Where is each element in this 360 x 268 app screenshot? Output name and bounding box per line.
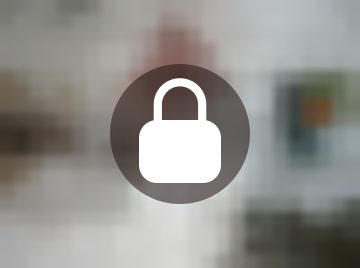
button[interactable]: Content locked [110, 64, 250, 204]
